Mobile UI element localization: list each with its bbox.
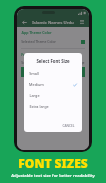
staticText: FONT SIZES xyxy=(18,155,88,171)
staticText: App Theme Color xyxy=(21,30,52,35)
staticText: Islamic Names Urdu xyxy=(32,19,74,25)
button[interactable]: More options xyxy=(78,18,86,26)
staticText: Large xyxy=(75,60,85,65)
staticText: Medium xyxy=(29,82,44,87)
button[interactable]: Medium xyxy=(29,79,77,90)
button[interactable]: Select xyxy=(21,60,85,65)
button[interactable]: Large xyxy=(29,90,77,101)
button[interactable]: CANCEL xyxy=(60,123,77,129)
staticText: Select Font Size xyxy=(36,58,70,64)
staticText: CANCEL xyxy=(62,124,75,128)
staticText: Select xyxy=(21,60,31,65)
staticText: Font Size xyxy=(21,52,37,57)
button[interactable]: Selected Theme Color xyxy=(21,39,85,44)
staticText: Large xyxy=(29,93,40,98)
button[interactable]: Extra large xyxy=(29,101,77,112)
staticText: Small xyxy=(29,71,39,76)
staticText: Selected Theme Color xyxy=(21,39,56,44)
button[interactable]: Back xyxy=(20,18,28,26)
staticText: Adjustable text size for better readabil… xyxy=(11,172,95,178)
staticText: Extra large xyxy=(29,104,49,109)
button[interactable]: Small xyxy=(29,68,77,79)
